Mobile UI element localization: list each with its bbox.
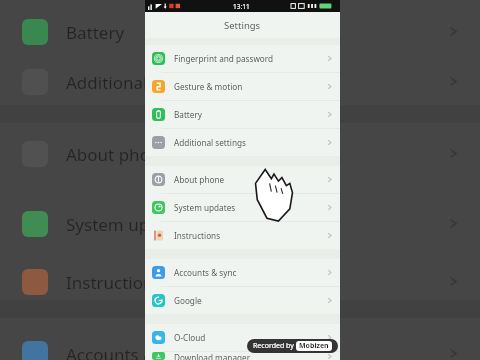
- staticText: Settings: [224, 19, 261, 32]
- staticText: About phone: [66, 143, 171, 166]
- staticText: Instructions: [174, 230, 221, 241]
- staticText: Recorded by: [253, 341, 296, 351]
- button[interactable]: Google: [145, 287, 340, 314]
- staticText: Instructions: [66, 271, 162, 294]
- staticText: Additional settings: [174, 137, 246, 148]
- button[interactable]: Accounts & sync: [145, 259, 340, 286]
- staticText: Accounts & sync: [174, 267, 237, 278]
- staticText: Gesture & motion: [174, 81, 243, 92]
- staticText: Download manager: [174, 352, 251, 360]
- staticText: System updates: [174, 202, 236, 213]
- staticText: Google: [174, 295, 202, 306]
- staticText: Mobizen: [299, 341, 329, 351]
- button[interactable]: Additional settings: [145, 129, 340, 156]
- staticText: Additional settings: [66, 71, 216, 94]
- button[interactable]: Battery: [145, 101, 340, 128]
- staticText: O-Cloud: [174, 332, 206, 343]
- button[interactable]: O-Cloud: [145, 324, 340, 351]
- button[interactable]: System updates: [145, 194, 340, 221]
- button[interactable]: Gesture & motion: [145, 73, 340, 100]
- button[interactable]: Fingerprint and password: [145, 45, 340, 72]
- button[interactable]: Download manager: [145, 352, 340, 360]
- button[interactable]: About phone: [145, 166, 340, 193]
- staticText: Fingerprint and password: [174, 53, 274, 64]
- staticText: Battery: [66, 21, 125, 44]
- staticText: About phone: [174, 174, 225, 185]
- button[interactable]: Instructions: [145, 222, 340, 249]
- staticText: 13:11: [233, 2, 250, 11]
- staticText: Battery: [174, 109, 203, 120]
- staticText: System updates: [66, 213, 194, 236]
- staticText: Accounts & sync: [66, 343, 196, 360]
